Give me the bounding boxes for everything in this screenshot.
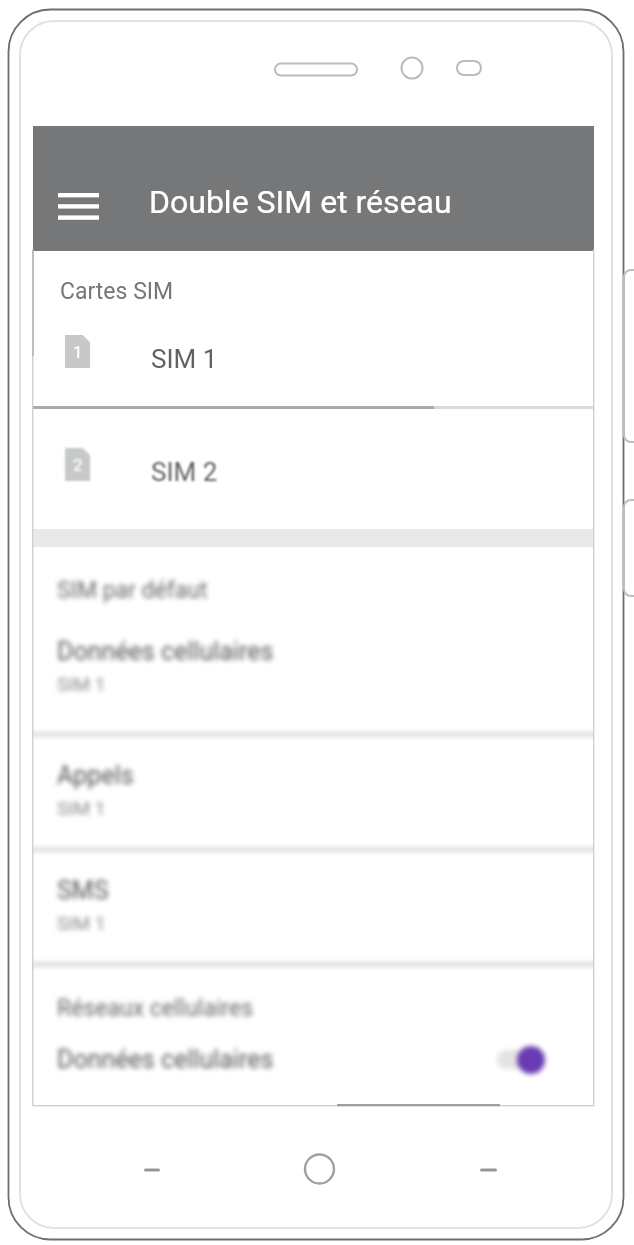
staticText: Données cellulaires xyxy=(57,1045,274,1074)
staticText: 2 xyxy=(73,455,83,475)
button[interactable]: 2 xyxy=(33,445,594,485)
staticText: SIM 1 xyxy=(57,673,106,695)
button[interactable]: SMS xyxy=(33,876,594,956)
staticText: SIM 2 xyxy=(151,457,218,485)
staticText: SIM 1 xyxy=(151,344,218,374)
button[interactable]: Appels xyxy=(33,761,594,841)
staticText: Appels xyxy=(57,761,134,790)
staticText: SMS xyxy=(57,876,109,905)
staticText: SIM par défaut xyxy=(57,577,208,604)
button[interactable]: Données cellulaires xyxy=(33,1031,594,1079)
staticText: SIM 1 xyxy=(57,912,106,934)
staticText: Cartes SIM xyxy=(60,278,174,305)
button[interactable]: Données cellulaires xyxy=(33,637,594,717)
staticText: Données cellulaires xyxy=(57,637,274,666)
staticText: 1 xyxy=(73,342,83,362)
staticText: SIM 1 xyxy=(57,797,106,819)
staticText: Réseaux cellulaires xyxy=(57,995,254,1022)
button[interactable]: Menu xyxy=(44,183,113,229)
button[interactable]: 1 xyxy=(33,332,594,372)
staticText: Double SIM et réseau xyxy=(149,183,452,221)
